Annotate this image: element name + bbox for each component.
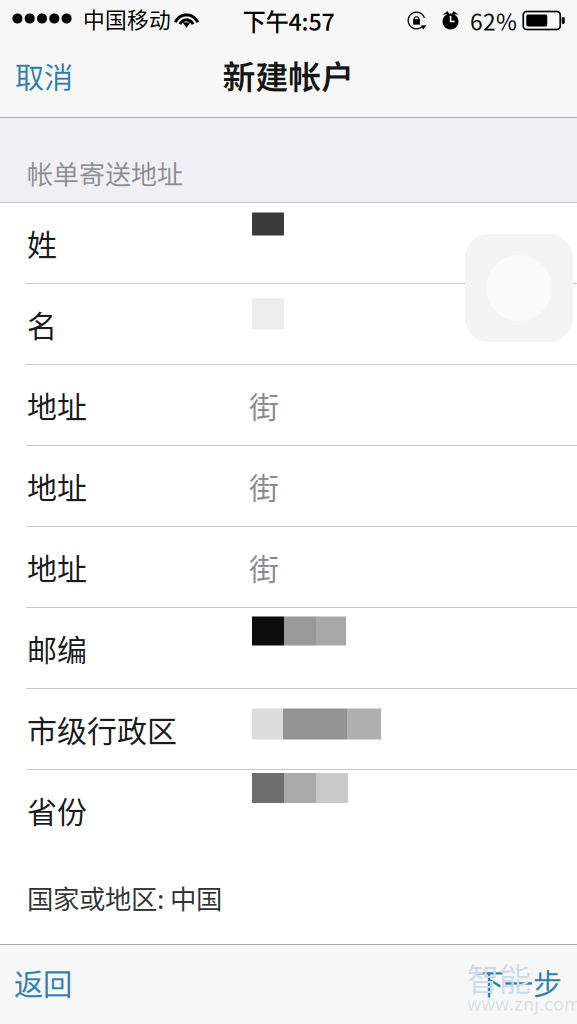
staticText: 取消	[15, 55, 73, 97]
button[interactable]: 市级行政区	[0, 689, 577, 770]
button[interactable]: 下一步	[459, 945, 577, 1024]
staticText: 新建帐户	[222, 51, 354, 99]
staticText: 省份	[27, 788, 87, 832]
button[interactable]: 名	[0, 284, 577, 365]
staticText: 邮编	[27, 626, 87, 670]
button[interactable]: 邮编	[0, 608, 577, 689]
staticText: 姓	[27, 221, 57, 265]
staticText: 地址	[27, 545, 87, 589]
button[interactable]: 地址	[0, 527, 577, 608]
staticText: 智能	[467, 954, 531, 1000]
button[interactable]: 姓	[0, 203, 577, 284]
staticText: 街	[249, 464, 279, 508]
button[interactable]: 地址	[0, 365, 577, 446]
staticText: www.znj.com	[467, 990, 577, 1016]
staticText: 帐单寄送地址	[27, 154, 183, 192]
staticText: 地址	[27, 383, 87, 427]
button[interactable]: 返回	[0, 945, 104, 1024]
staticText: 下午4:57	[242, 4, 334, 37]
staticText: 街	[249, 545, 279, 589]
staticText: 地址	[27, 464, 87, 508]
button[interactable]: 取消	[0, 41, 103, 117]
button[interactable]: 地址	[0, 446, 577, 527]
staticText: 市级行政区	[27, 707, 177, 751]
staticText: 中国移动	[83, 3, 171, 34]
button[interactable]: 省份	[0, 770, 577, 851]
staticText: 国家或地区: 中国	[27, 878, 222, 917]
staticText: 下一步	[475, 961, 562, 1004]
staticText: 返回	[14, 961, 72, 1004]
staticText: 名	[27, 302, 57, 346]
staticText: 62%	[470, 4, 517, 37]
staticText: 街	[249, 383, 279, 427]
